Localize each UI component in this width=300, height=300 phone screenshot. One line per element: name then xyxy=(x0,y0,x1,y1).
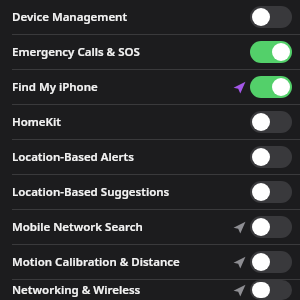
staticText: HomeKit xyxy=(12,114,233,130)
button[interactable]: HomeKit toggle xyxy=(250,111,292,133)
staticText: Networking & Wireless xyxy=(12,282,233,298)
button[interactable]: Location-Based Suggestions xyxy=(0,175,300,209)
button[interactable]: Find My iPhone toggle xyxy=(250,76,292,98)
button[interactable]: Location-Based Suggestions toggle xyxy=(250,181,292,203)
staticText: Device Management xyxy=(12,9,233,25)
staticText: Motion Calibration & Distance xyxy=(12,254,233,270)
button[interactable]: Location-Based Alerts xyxy=(0,140,300,174)
button[interactable]: Device Management toggle xyxy=(250,6,292,28)
button[interactable]: Device Management xyxy=(0,0,300,34)
button[interactable]: Mobile Network Search xyxy=(0,210,300,244)
staticText: Find My iPhone xyxy=(12,79,233,95)
staticText: Emergency Calls & SOS xyxy=(12,44,233,60)
button[interactable]: Networking & Wireless xyxy=(0,280,300,300)
staticText: Mobile Network Search xyxy=(12,219,233,235)
button[interactable]: Mobile Network Search toggle xyxy=(250,216,292,238)
button[interactable]: HomeKit xyxy=(0,105,300,139)
staticText: Location-Based Alerts xyxy=(12,149,233,165)
staticText: Location-Based Suggestions xyxy=(12,184,233,200)
button[interactable]: Location-Based Alerts toggle xyxy=(250,146,292,168)
button[interactable]: Motion Calibration & Distance toggle xyxy=(250,251,292,273)
button[interactable]: Emergency Calls & SOS xyxy=(0,35,300,69)
button[interactable]: Networking & Wireless toggle xyxy=(250,280,292,300)
button[interactable]: Emergency Calls & SOS toggle xyxy=(250,41,292,63)
button[interactable]: Find My iPhone xyxy=(0,70,300,104)
button[interactable]: Motion Calibration & Distance xyxy=(0,245,300,279)
